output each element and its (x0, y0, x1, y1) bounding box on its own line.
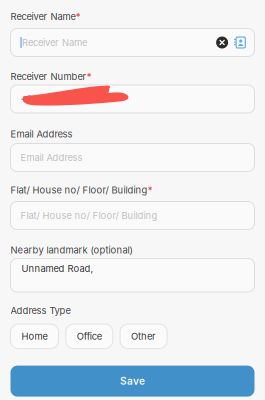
staticText: Flat/ House no/ Floor/ Building (10, 184, 147, 196)
staticText: Other (131, 331, 156, 342)
button[interactable]: Choose from contacts (234, 36, 254, 48)
staticText: Email Address (10, 128, 72, 140)
staticText: Unnamed Road, (21, 263, 93, 274)
staticText: Receiver Name (22, 37, 87, 48)
staticText: Nearby landmark (optional) (10, 244, 132, 256)
staticText: * (86, 71, 91, 82)
staticText: Save (120, 375, 145, 387)
staticText: Email Address (20, 152, 82, 163)
staticText: Address Type (10, 305, 70, 316)
staticText: Office (77, 331, 102, 342)
staticText: +91 9 (20, 93, 45, 105)
staticText: Home (21, 331, 47, 342)
button[interactable]: Office (66, 324, 113, 349)
button[interactable]: Clear text (216, 36, 234, 48)
staticText: * (75, 11, 80, 22)
staticText: Receiver Name (10, 11, 75, 22)
button[interactable]: Home (10, 324, 58, 349)
staticText: * (147, 184, 152, 196)
button[interactable]: Other (120, 324, 167, 349)
staticText: Receiver Number (10, 71, 86, 82)
staticText: Flat/ House no/ Floor/ Building (20, 210, 157, 221)
button[interactable]: Save (10, 366, 254, 397)
